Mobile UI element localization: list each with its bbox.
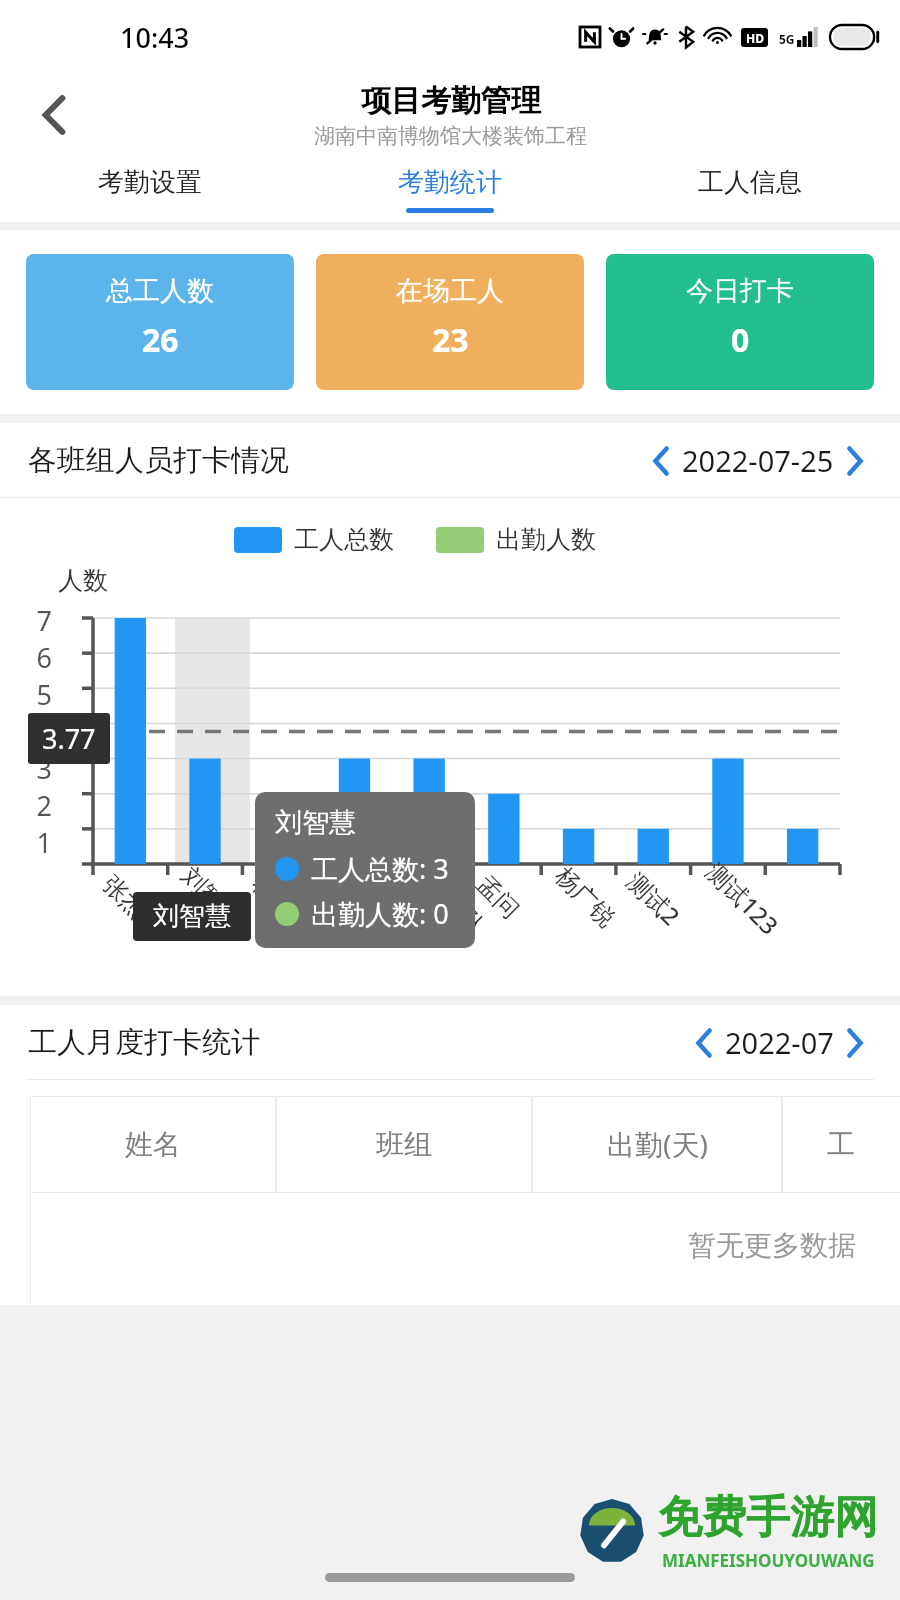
- staticText: MIANFEISHOUYOUWANG: [662, 1549, 875, 1572]
- staticText: 人数: [58, 565, 108, 596]
- staticText: 工: [827, 1127, 855, 1162]
- staticText: 出勤人数: [496, 524, 596, 555]
- button[interactable]: 考勤统计: [300, 156, 600, 222]
- staticText: 项目考勤管理: [361, 82, 541, 120]
- staticText: 工人总数: [294, 524, 394, 555]
- button[interactable]: 工人信息: [600, 156, 900, 222]
- button[interactable]: Previous: [687, 1026, 721, 1060]
- button[interactable]: Next: [838, 1026, 872, 1060]
- staticText: 工人月度打卡统计: [28, 1024, 260, 1061]
- staticText: 今日打卡: [686, 274, 794, 308]
- staticText: 2022-07: [725, 1023, 834, 1062]
- staticText: 出勤人数: 0: [311, 895, 449, 932]
- button[interactable]: Previous: [644, 444, 678, 478]
- staticText: 刘智慧: [153, 900, 231, 933]
- staticText: 刘智慧: [175, 861, 247, 933]
- staticText: 孟问: [470, 869, 526, 925]
- staticText: 杨广锐: [549, 861, 621, 933]
- staticText: 在场工人: [396, 274, 504, 308]
- staticText: 班组: [376, 1127, 432, 1162]
- staticText: 张杰: [96, 869, 152, 925]
- staticText: 23: [432, 318, 469, 362]
- staticText: 工人总数: 3: [311, 850, 449, 887]
- staticText: 7: [22, 602, 52, 639]
- staticText: 5: [22, 676, 52, 713]
- staticText: 1: [22, 824, 52, 861]
- staticText: 5G: [779, 31, 795, 47]
- staticText: 考勤设置: [98, 166, 202, 199]
- staticText: 各班组人员打卡情况: [28, 442, 289, 479]
- staticText: 湖南中南博物馆大楼装饰工程: [314, 123, 587, 149]
- button[interactable]: 今日打卡: [606, 254, 874, 390]
- staticText: 自来组队: [402, 852, 492, 942]
- button[interactable]: 考勤设置: [0, 156, 300, 222]
- staticText: 2: [22, 787, 52, 824]
- staticText: 刘智慧: [275, 806, 356, 840]
- button[interactable]: Next: [838, 444, 872, 478]
- staticText: 测试2: [620, 865, 688, 932]
- staticText: 6: [22, 639, 52, 676]
- button[interactable]: 总工人数: [26, 254, 294, 390]
- staticText: 测试123: [699, 855, 786, 942]
- staticText: 26: [142, 318, 179, 362]
- staticText: 3.77: [42, 720, 96, 757]
- button[interactable]: 在场工人: [316, 254, 584, 390]
- staticText: 暂无更多数据: [688, 1228, 856, 1263]
- button[interactable]: Back: [26, 87, 82, 143]
- staticText: 姓名: [125, 1127, 181, 1162]
- staticText: 工人信息: [698, 166, 802, 199]
- staticText: 考勤统计: [398, 166, 502, 199]
- staticText: 0: [731, 318, 750, 362]
- staticText: 10:43: [120, 19, 190, 56]
- staticText: 2022-07-25: [682, 441, 834, 480]
- staticText: HD: [746, 30, 764, 46]
- staticText: 添加组: [324, 861, 396, 933]
- staticText: 3: [22, 750, 52, 787]
- staticText: 免费手游网: [658, 1490, 878, 1545]
- staticText: 总工人数: [106, 274, 214, 308]
- staticText: 4: [22, 713, 52, 750]
- staticText: 杨凡: [246, 869, 302, 925]
- staticText: 出勤(天): [607, 1125, 708, 1163]
